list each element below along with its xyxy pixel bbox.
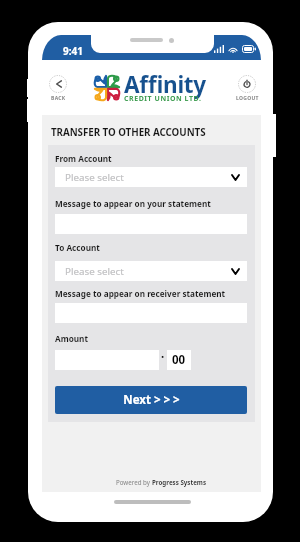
staticText: . bbox=[161, 346, 165, 362]
staticText: BACK bbox=[51, 95, 66, 102]
staticText: Affinity bbox=[124, 69, 206, 100]
staticText: Please select bbox=[65, 171, 124, 184]
staticText: Powered by bbox=[116, 478, 152, 486]
staticText: LOGOUT bbox=[236, 95, 259, 102]
staticText: CREDIT UNION LTD. bbox=[124, 94, 202, 104]
staticText: From Account bbox=[55, 153, 112, 164]
button[interactable]: Back bbox=[42, 75, 74, 102]
button[interactable]: Please select bbox=[55, 167, 247, 187]
staticText: Message to appear on receiver statement bbox=[55, 288, 226, 299]
button[interactable]: Logout bbox=[231, 75, 263, 102]
staticText: Please select bbox=[65, 265, 124, 278]
button[interactable]: 00 bbox=[167, 350, 191, 370]
staticText: 9:41 bbox=[63, 44, 83, 58]
staticText: Message to appear on your statement bbox=[55, 198, 211, 209]
staticText: Next > > > bbox=[123, 392, 180, 408]
button[interactable]: Next > > > bbox=[55, 386, 247, 414]
staticText: Amount bbox=[55, 333, 88, 344]
staticText: To Account bbox=[55, 242, 100, 253]
staticText: 00 bbox=[172, 352, 186, 368]
staticText: Progress Systems bbox=[152, 478, 206, 486]
button[interactable]: Please select bbox=[55, 261, 247, 281]
staticText: TRANSFER TO OTHER ACCOUNTS bbox=[51, 126, 206, 139]
